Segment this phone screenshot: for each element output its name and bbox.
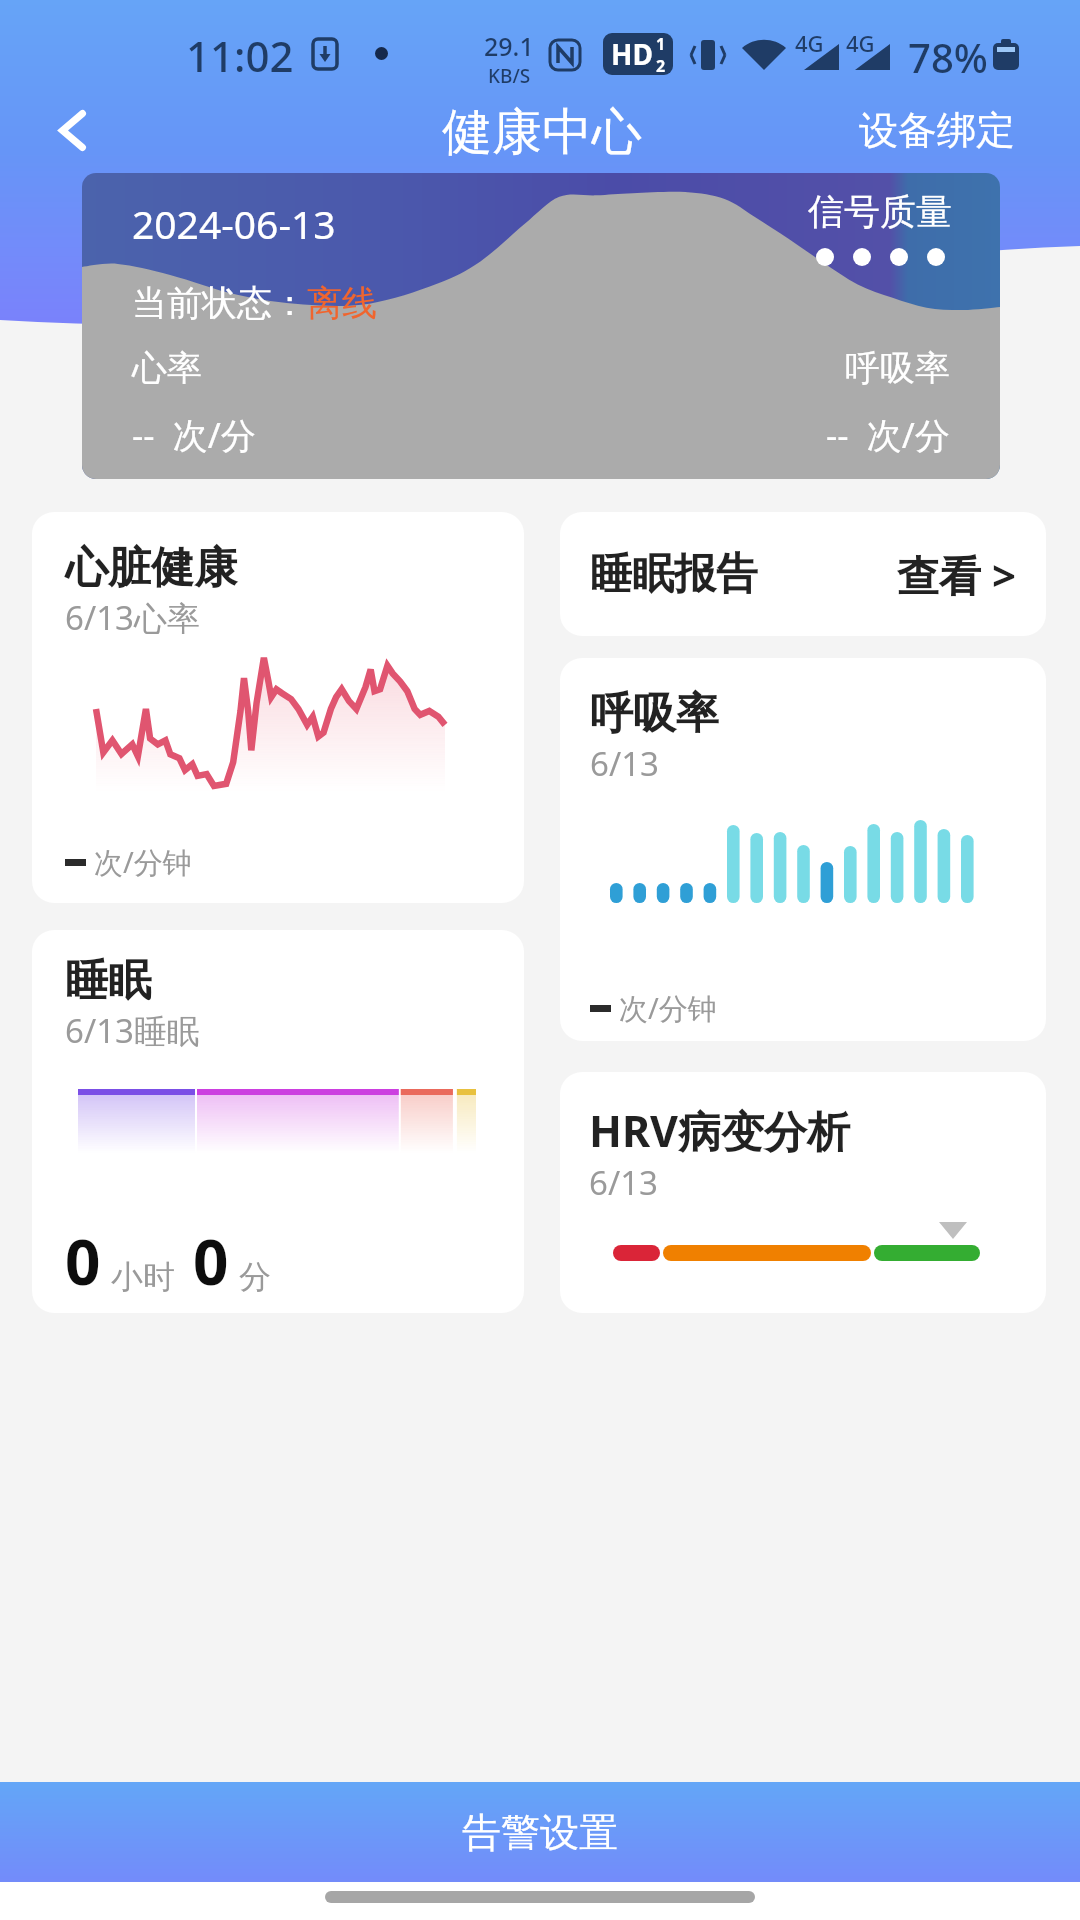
staticText: KB/S [488, 63, 531, 89]
staticText: 2 [656, 55, 666, 75]
staticText: HD [611, 35, 653, 73]
staticText: 1 [656, 33, 666, 55]
staticText: 次/分钟 [94, 842, 192, 882]
staticText: 78% [908, 30, 988, 84]
button[interactable]: HRV病变分析 [560, 1072, 1046, 1313]
staticText: 睡眠 [65, 954, 151, 1008]
staticText: 健康中心 [442, 101, 642, 164]
staticText: 离线 [307, 281, 377, 325]
staticText: 次/分钟 [619, 988, 717, 1028]
button[interactable]: 睡眠 [32, 930, 524, 1313]
staticText: 0 [193, 1219, 229, 1303]
button[interactable]: 设备绑定 [859, 106, 1015, 155]
staticText: 6/13心率 [65, 595, 200, 640]
button[interactable]: 睡眠报告 [560, 512, 1046, 636]
staticText: 6/13 [590, 741, 659, 786]
staticText: 当前状态： [132, 281, 307, 325]
staticText: 4G [795, 28, 824, 58]
staticText: 睡眠报告 [590, 548, 758, 601]
staticText: HRV病变分析 [589, 1101, 851, 1160]
staticText: 0 [65, 1219, 101, 1303]
staticText: 心脏健康 [65, 541, 237, 595]
button[interactable]: 2024-06-13 [82, 173, 1000, 479]
staticText: 呼吸率 [845, 346, 950, 390]
staticText: 呼吸率 [590, 687, 719, 741]
staticText: 心率 [132, 346, 202, 390]
staticText: -- 次/分 [132, 411, 256, 459]
staticText: 6/13睡眠 [65, 1008, 200, 1053]
button[interactable]: 心脏健康 [32, 512, 524, 903]
staticText: 6/13 [589, 1160, 658, 1205]
staticText: 告警设置 [462, 1808, 618, 1857]
button[interactable]: Back [36, 94, 108, 166]
staticText: 11:02 [186, 27, 294, 84]
staticText: 小时 [111, 1257, 175, 1297]
button[interactable]: 告警设置 [0, 1782, 1080, 1882]
button[interactable]: 呼吸率 [560, 658, 1046, 1041]
staticText: 4G [846, 28, 875, 58]
staticText: 29.1 [484, 29, 534, 63]
staticText: 查看 > [897, 546, 1016, 603]
staticText: 设备绑定 [859, 106, 1015, 155]
staticText: 分 [239, 1257, 271, 1297]
staticText: 2024-06-13 [132, 197, 336, 250]
staticText: -- 次/分 [826, 411, 950, 459]
staticText: 信号质量 [808, 189, 952, 234]
